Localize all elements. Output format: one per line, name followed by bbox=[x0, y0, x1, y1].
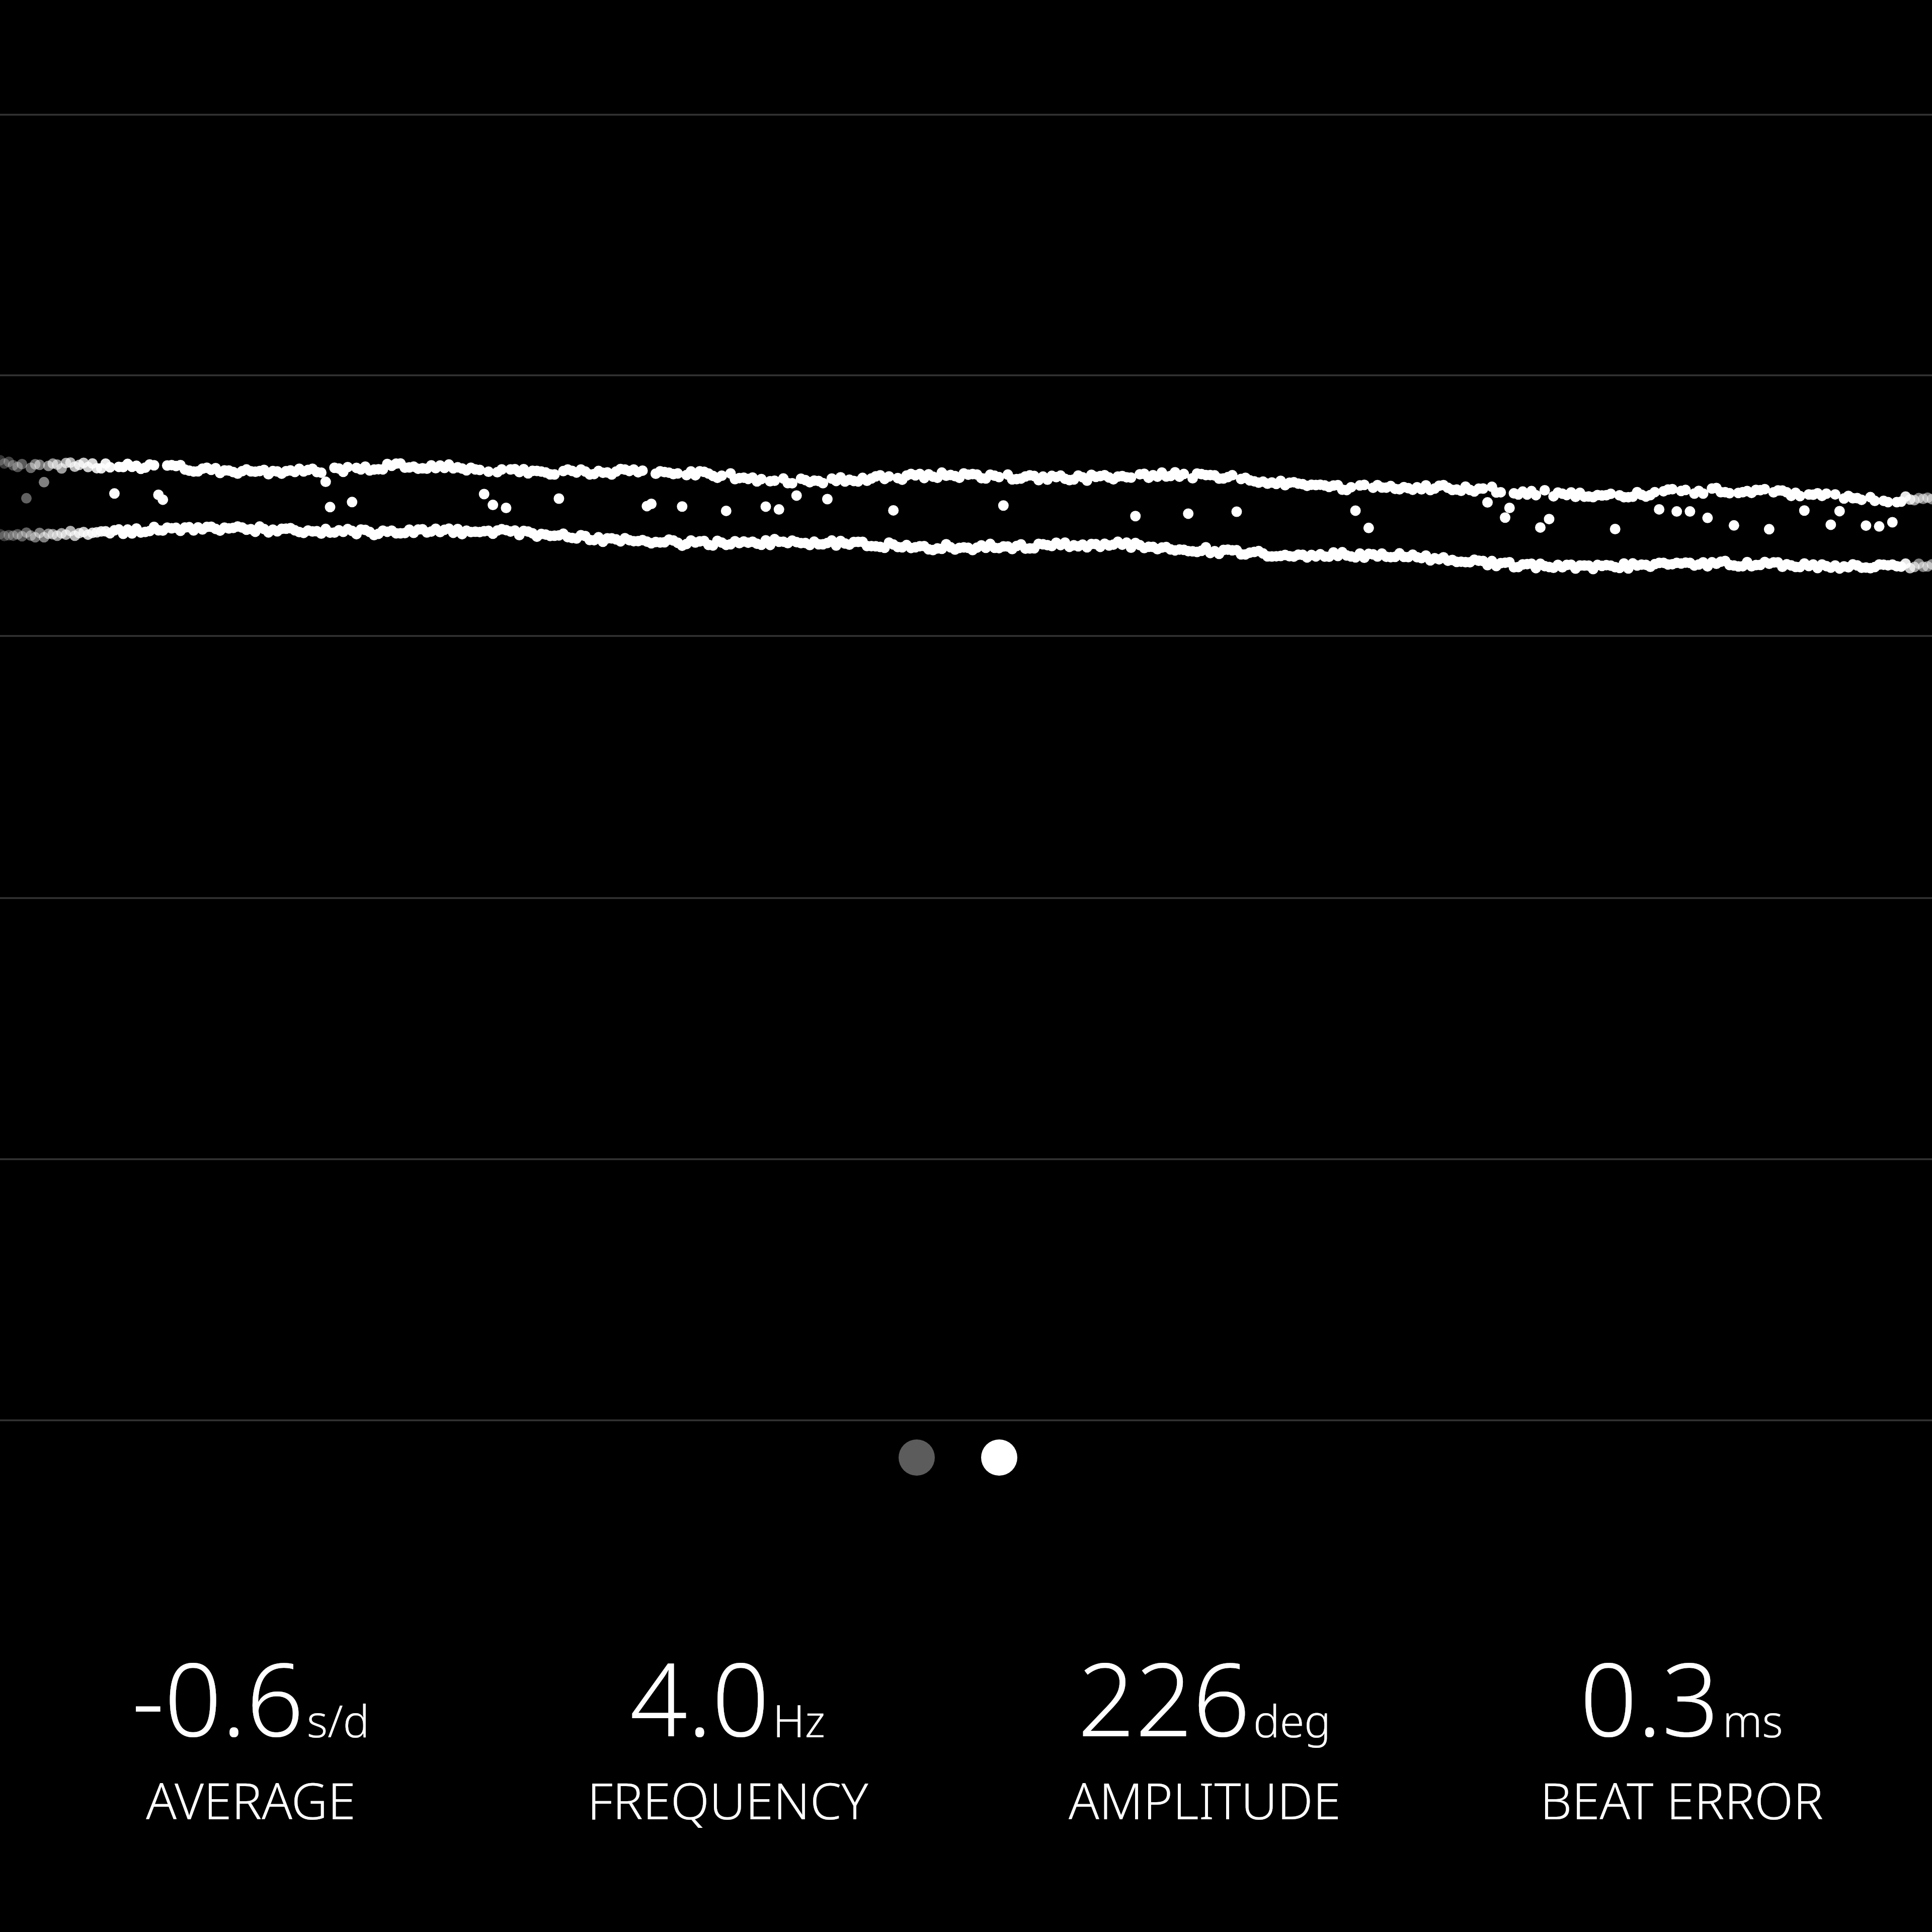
staticText: FREQUENCY bbox=[587, 1765, 868, 1834]
button[interactable]: 0.3 bbox=[1443, 1629, 1920, 1834]
staticText: 0.3 bbox=[1580, 1629, 1720, 1765]
staticText: Hz bbox=[773, 1690, 826, 1750]
button[interactable]: -0.6 bbox=[12, 1629, 489, 1834]
staticText: AVERAGE bbox=[146, 1765, 356, 1834]
staticText: s/d bbox=[307, 1690, 370, 1750]
button[interactable]: 4.0 bbox=[489, 1629, 966, 1834]
button[interactable]: Page 2 of 2 bbox=[891, 1431, 1025, 1484]
staticText: deg bbox=[1253, 1690, 1331, 1750]
staticText: 226 bbox=[1078, 1629, 1250, 1765]
staticText: AMPLITUDE bbox=[1069, 1765, 1341, 1834]
button[interactable]: 226 bbox=[966, 1629, 1443, 1834]
staticText: ms bbox=[1723, 1690, 1783, 1750]
staticText: BEAT ERROR bbox=[1540, 1765, 1823, 1834]
staticText: 4.0 bbox=[630, 1629, 770, 1765]
staticText: -0.6 bbox=[132, 1629, 304, 1765]
